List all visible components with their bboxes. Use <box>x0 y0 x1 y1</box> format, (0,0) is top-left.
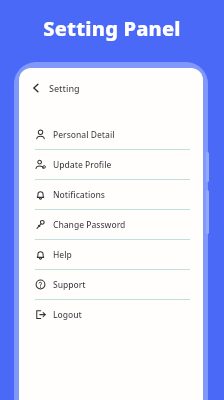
button[interactable]: Change Password <box>19 210 203 239</box>
button[interactable]: Notifications <box>19 180 203 209</box>
staticText: Setting Panel <box>43 15 181 42</box>
staticText: Setting <box>49 82 80 94</box>
staticText: Logout <box>53 309 82 321</box>
button[interactable]: Support <box>19 270 203 299</box>
staticText: Help <box>53 249 72 261</box>
staticText: Support <box>53 279 86 291</box>
staticText: Update Profile <box>53 159 112 171</box>
staticText: Personal Detail <box>53 129 115 141</box>
button[interactable]: Back <box>19 68 203 108</box>
staticText: Change Password <box>53 219 126 231</box>
button[interactable]: Help <box>19 240 203 269</box>
button[interactable]: Personal Detail <box>19 120 203 149</box>
button[interactable]: Update Profile <box>19 150 203 179</box>
other: Back <box>30 82 42 94</box>
staticText: Notifications <box>53 189 105 201</box>
button[interactable]: Logout <box>19 300 203 329</box>
